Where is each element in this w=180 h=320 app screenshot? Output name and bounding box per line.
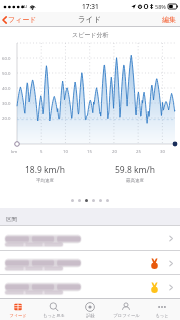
- staticText: 最高速度: [126, 178, 144, 184]
- staticText: km: [11, 148, 18, 154]
- button[interactable]: [0, 275, 180, 299]
- button[interactable]: 編集: [162, 15, 180, 24]
- staticText: もっと見る: [43, 313, 65, 318]
- staticText: プロフィール: [113, 313, 140, 318]
- staticText: 平均速度: [36, 178, 54, 184]
- staticText: スピード分析: [72, 31, 109, 39]
- button[interactable]: [0, 226, 180, 251]
- staticText: 30.0: [2, 100, 11, 106]
- staticText: 59.8 km/h: [115, 164, 155, 176]
- button[interactable]: [0, 251, 180, 275]
- staticText: ライド: [78, 15, 102, 24]
- staticText: 20: [112, 148, 117, 154]
- other: More: [157, 302, 167, 312]
- staticText: 40.0: [2, 85, 11, 91]
- button[interactable]: フィード: [0, 15, 43, 24]
- staticText: 記録: [86, 313, 95, 318]
- staticText: 15: [87, 148, 92, 154]
- button[interactable]: Record: [72, 299, 108, 320]
- staticText: 60.0: [2, 55, 11, 61]
- staticText: 18.9 km/h: [25, 164, 65, 176]
- staticText: 30: [160, 148, 165, 154]
- other: Feed: [13, 302, 23, 312]
- other: Profile: [121, 302, 131, 312]
- other: Explore: [49, 302, 59, 312]
- staticText: 50.0: [2, 70, 11, 76]
- button[interactable]: Explore: [36, 299, 72, 320]
- staticText: フィード: [9, 313, 27, 318]
- staticText: 20.0: [2, 115, 11, 121]
- staticText: もっと: [155, 313, 169, 318]
- button[interactable]: Profile: [108, 299, 144, 320]
- staticText: 区間: [6, 216, 17, 223]
- staticText: 10: [63, 148, 68, 154]
- staticText: 58%: [155, 3, 166, 10]
- button[interactable]: More: [144, 299, 180, 320]
- staticText: フィード: [8, 15, 37, 24]
- other: Record: [85, 302, 95, 312]
- staticText: 5: [40, 148, 43, 154]
- staticText: 25: [136, 148, 141, 154]
- staticText: 17:31: [82, 2, 99, 11]
- staticText: au: [21, 3, 27, 10]
- button[interactable]: Feed: [0, 299, 36, 320]
